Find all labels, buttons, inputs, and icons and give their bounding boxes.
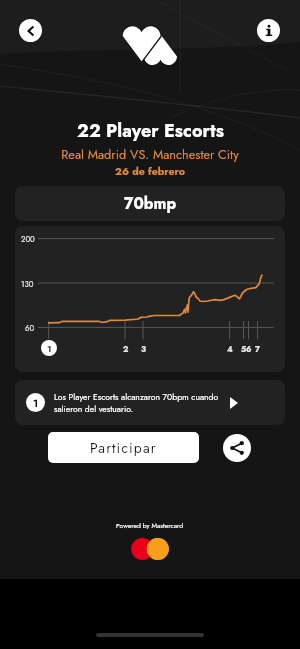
button[interactable]: 1	[15, 380, 285, 425]
staticText: 2	[123, 343, 129, 355]
staticText: 70bmp	[124, 192, 177, 215]
staticText: 26 de febrero	[115, 164, 185, 179]
staticText: 22 Player Escorts	[77, 118, 224, 144]
staticText: 130	[21, 279, 34, 290]
staticText: 7	[255, 343, 260, 355]
staticText: 60	[25, 323, 35, 334]
staticText: Participar	[90, 438, 157, 458]
staticText: 4	[227, 343, 233, 355]
staticText: 200	[21, 234, 35, 245]
staticText: 3	[141, 343, 147, 355]
staticText: Los Player Escorts alcanzaron 70bpm cuan…	[54, 391, 224, 415]
staticText: Powered by Mastercard	[116, 521, 184, 531]
staticText: 1	[33, 396, 39, 410]
button[interactable]: Participar	[48, 432, 199, 463]
button[interactable]: Information	[257, 19, 280, 42]
button[interactable]: Back	[19, 19, 42, 42]
staticText: 5	[241, 343, 247, 355]
staticText: Real Madrid VS. Manchester City	[61, 145, 239, 163]
staticText: 6	[246, 343, 252, 355]
button[interactable]: Share	[223, 434, 251, 462]
staticText: 1	[47, 342, 52, 355]
